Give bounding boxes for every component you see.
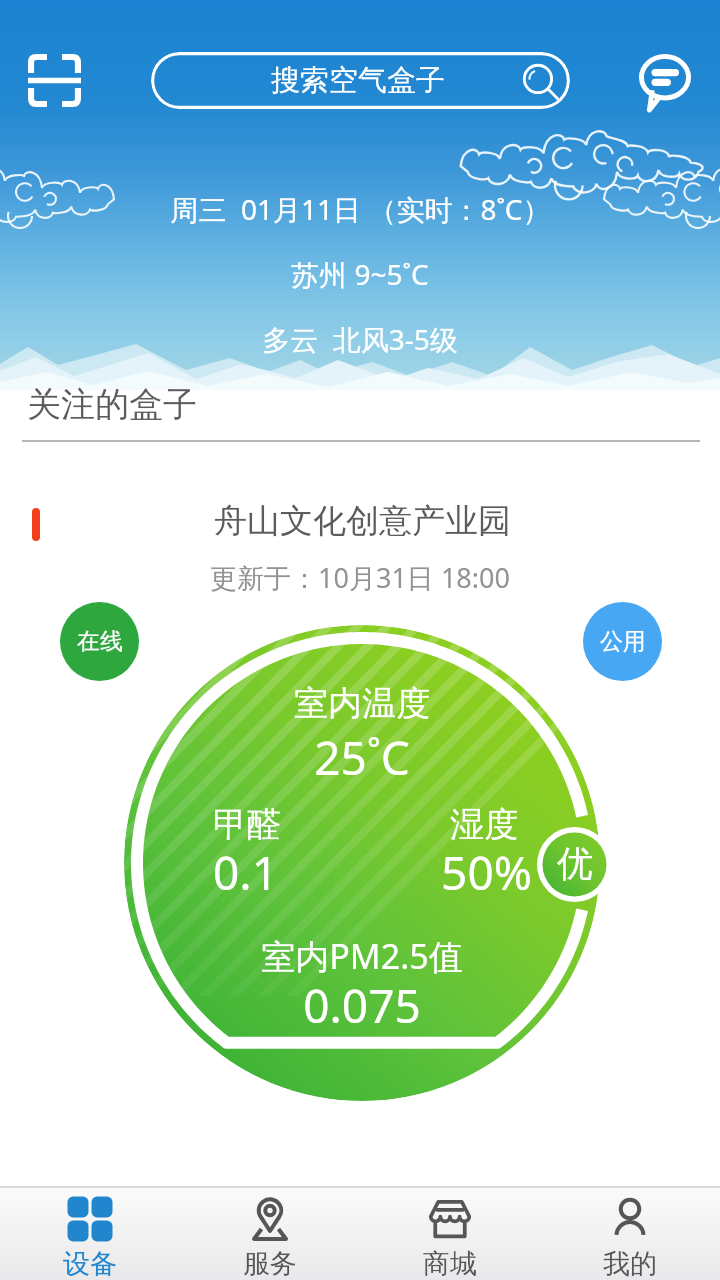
button[interactable]: 服务 [180, 1186, 360, 1280]
staticText: 甲醛 [213, 803, 281, 846]
button[interactable]: 我的 [540, 1186, 720, 1280]
staticText: 湿度 [450, 803, 518, 846]
button[interactable] [124, 625, 600, 1101]
button[interactable]: 公用 [583, 602, 662, 681]
staticText: 搜索空气盒子 [271, 62, 445, 99]
staticText: 我的 [603, 1247, 657, 1280]
button[interactable]: 商城 [360, 1186, 540, 1280]
staticText: 设备 [63, 1247, 117, 1280]
staticText: 室内温度 [294, 682, 430, 725]
staticText: 多云 北风3-5级 [262, 320, 458, 358]
staticText: 服务 [243, 1247, 297, 1280]
button[interactable]: Scan QR code [14, 40, 94, 120]
button[interactable]: 在线 [60, 602, 139, 681]
staticText: 优 [557, 841, 593, 886]
staticText: 室内PM2.5值 [261, 933, 463, 979]
button[interactable]: 搜索空气盒子 [151, 52, 570, 109]
staticText: 舟山文化创意产业园 [214, 500, 511, 542]
button[interactable]: 设备 [0, 1186, 180, 1280]
staticText: 0.1 [213, 841, 278, 904]
staticText: 关注的盒子 [27, 383, 197, 426]
button[interactable]: Messages [625, 40, 705, 120]
button[interactable]: 优 [537, 827, 612, 902]
staticText: 商城 [423, 1247, 477, 1280]
staticText: 50% [441, 841, 532, 904]
staticText: 周三 01月11日 （实时：8˚C） [170, 190, 551, 228]
staticText: 25˚C [314, 726, 410, 789]
staticText: 更新于：10月31日 18:00 [210, 559, 510, 596]
staticText: 在线 [77, 627, 123, 656]
staticText: 0.075 [303, 974, 421, 1037]
staticText: 苏州 9~5˚C [291, 255, 429, 293]
staticText: 公用 [600, 627, 646, 656]
